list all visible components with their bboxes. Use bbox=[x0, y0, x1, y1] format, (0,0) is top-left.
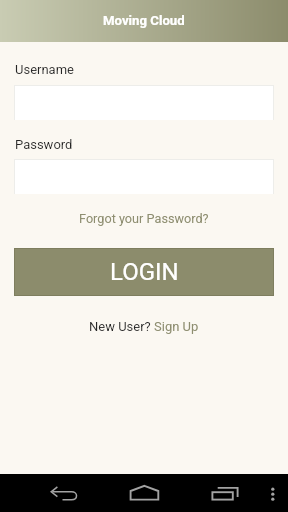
staticText: Password bbox=[15, 137, 73, 152]
staticText: LOGIN bbox=[110, 258, 179, 286]
staticText: Sign Up bbox=[154, 319, 199, 334]
staticText: Username bbox=[15, 62, 74, 77]
button[interactable]: Sign Up bbox=[154, 319, 199, 334]
staticText: Forgot your Password? bbox=[79, 211, 209, 226]
staticText: Moving Cloud bbox=[103, 13, 185, 28]
button[interactable]: LOGIN bbox=[15, 249, 273, 295]
button[interactable]: Forgot your Password? bbox=[0, 211, 288, 226]
button[interactable]: Home bbox=[126, 475, 162, 511]
button[interactable]: More options bbox=[258, 480, 284, 506]
button[interactable]: Recent apps bbox=[207, 475, 243, 511]
staticText: New User? bbox=[89, 319, 154, 334]
button[interactable]: Back bbox=[46, 475, 82, 511]
